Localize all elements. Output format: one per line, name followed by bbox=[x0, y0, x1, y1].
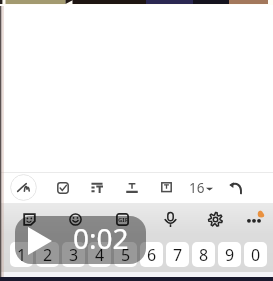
button[interactable]: GIF bbox=[111, 208, 133, 230]
staticText: 0 bbox=[251, 244, 261, 266]
staticText: 5 bbox=[121, 244, 131, 266]
button[interactable]: 8 bbox=[192, 242, 215, 267]
button[interactable]: Undo bbox=[222, 174, 249, 201]
button[interactable]: 6 bbox=[140, 242, 163, 267]
staticText: 0:02 bbox=[73, 219, 129, 257]
button[interactable]: Voice input bbox=[159, 208, 181, 230]
button[interactable]: 3 bbox=[62, 242, 85, 267]
staticText: GIF bbox=[118, 216, 128, 224]
staticText: 1 bbox=[17, 244, 27, 266]
button[interactable]: Checklist bbox=[49, 174, 76, 201]
staticText: 2 bbox=[43, 244, 53, 266]
button[interactable]: Paragraph style bbox=[83, 174, 110, 201]
button[interactable]: Text format bbox=[118, 174, 145, 201]
button[interactable]: Emoji bbox=[64, 208, 86, 230]
button[interactable]: Handwriting bbox=[10, 174, 37, 201]
staticText: 9 bbox=[225, 244, 235, 266]
staticText: 6 bbox=[147, 244, 157, 266]
button[interactable]: 5 bbox=[114, 242, 137, 267]
button[interactable]: Settings bbox=[204, 208, 226, 230]
button[interactable]: 16 bbox=[189, 177, 213, 199]
button[interactable]: Play voice recording bbox=[15, 216, 146, 264]
button[interactable]: 0 bbox=[244, 242, 267, 267]
staticText: 3 bbox=[69, 244, 79, 266]
button[interactable]: 9 bbox=[218, 242, 241, 267]
button[interactable]: 2 bbox=[36, 242, 59, 267]
button[interactable]: 7 bbox=[166, 242, 189, 267]
staticText: 7 bbox=[173, 244, 183, 266]
button[interactable]: 1 bbox=[10, 242, 33, 267]
button[interactable]: Stickers bbox=[18, 208, 40, 230]
button[interactable]: More options bbox=[243, 208, 265, 230]
staticText: 16 bbox=[189, 179, 205, 197]
button[interactable]: Insert text box bbox=[153, 174, 180, 201]
staticText: 8 bbox=[199, 244, 209, 266]
staticText: 4 bbox=[95, 244, 105, 266]
button[interactable]: 4 bbox=[88, 242, 111, 267]
